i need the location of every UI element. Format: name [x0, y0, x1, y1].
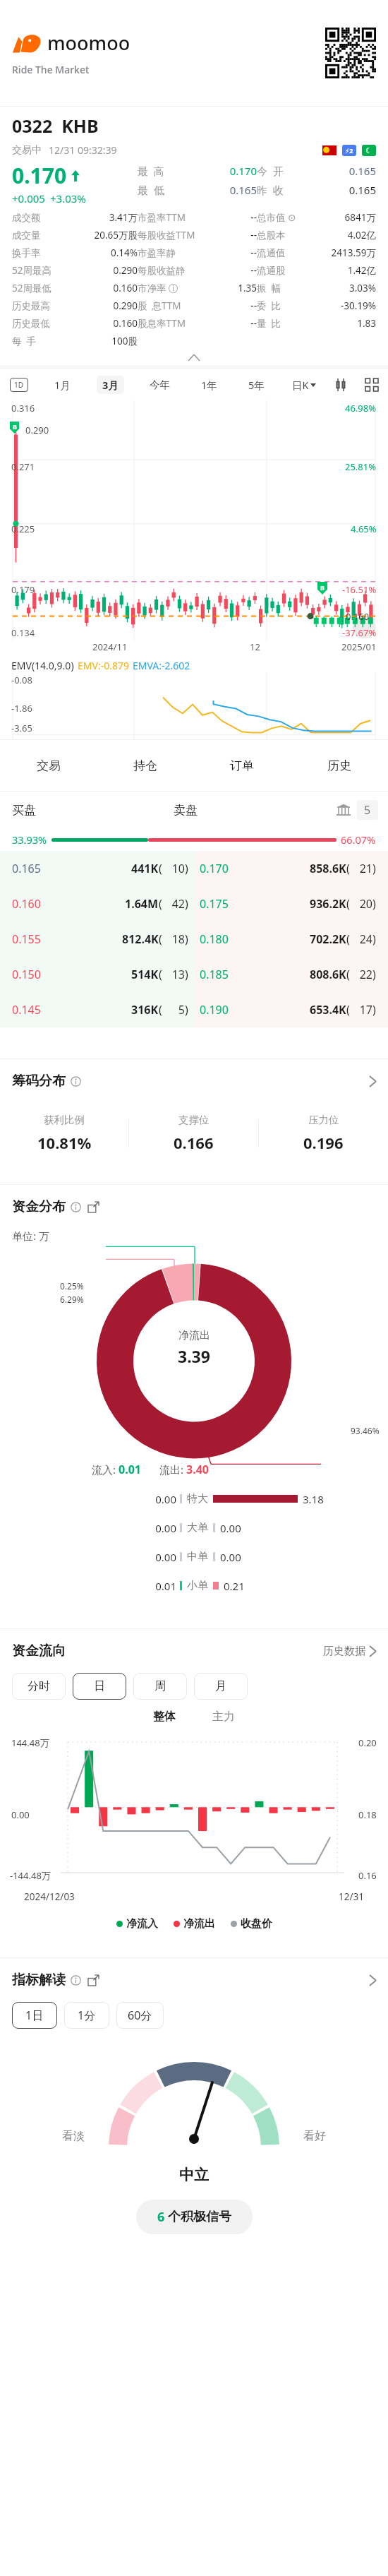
staticText: 买盘	[12, 803, 36, 818]
button[interactable]: Candle	[334, 378, 347, 391]
button[interactable]: 0.155	[12, 922, 188, 957]
staticText: 858.6K	[310, 861, 346, 876]
button[interactable]: 1年	[195, 376, 223, 394]
staticText: 12	[250, 640, 260, 653]
staticText: 0.00	[0, 1521, 176, 1535]
staticText: 0.165	[12, 861, 41, 876]
staticText: -16.51%	[342, 583, 377, 596]
button[interactable]: 1D	[10, 378, 28, 392]
staticText: )	[185, 967, 188, 982]
staticText: 分时	[28, 1679, 50, 1693]
button[interactable]: 日	[73, 1673, 126, 1700]
button[interactable]: 月	[194, 1673, 248, 1700]
staticText: 10.81%	[37, 1132, 92, 1153]
staticText: 52周最高	[12, 264, 51, 277]
staticText: 0.165	[164, 183, 257, 197]
staticText: 交易中	[12, 144, 42, 157]
staticText: 0.16	[358, 1869, 377, 1882]
staticText: 看好	[303, 2129, 326, 2143]
button[interactable]: 5	[357, 800, 378, 820]
button[interactable]: 1月	[49, 376, 76, 394]
staticText: 1分	[78, 2008, 96, 2023]
staticText: 0.14%	[41, 246, 138, 259]
staticText: -30.19%	[281, 299, 376, 312]
staticText: B	[320, 583, 325, 592]
button[interactable]: 60分	[116, 2002, 164, 2029]
staticText: 0.290	[50, 299, 138, 312]
staticText: B	[13, 422, 17, 431]
staticText: 每股收益TTM	[138, 229, 195, 241]
staticText: 0.185	[200, 967, 229, 982]
staticText: 0.21	[224, 1579, 245, 1593]
staticText: -0.08	[11, 674, 32, 686]
button[interactable]: 1分	[64, 2002, 109, 2029]
staticText: 4.02亿	[286, 229, 376, 241]
button[interactable]: 指标解读	[12, 1958, 376, 2002]
button[interactable]: 0.185	[200, 957, 376, 992]
button[interactable]: 0.170	[200, 851, 376, 886]
staticText: 0.170	[164, 164, 257, 178]
button[interactable]: 筹码分布	[12, 1059, 376, 1103]
staticText: )	[372, 1002, 376, 1018]
button[interactable]: 资金分布	[12, 1185, 376, 1229]
staticText: 21	[350, 861, 372, 876]
staticText: 今 开	[257, 164, 284, 178]
button[interactable]: 3月	[97, 376, 124, 394]
button[interactable]: Broker	[336, 802, 351, 818]
staticText: 净流出	[183, 1917, 215, 1931]
button[interactable]: 0.160	[12, 886, 188, 922]
button[interactable]: 主力	[212, 1710, 235, 1724]
staticText: 0.00	[0, 1550, 176, 1564]
staticText: 持仓	[133, 758, 157, 773]
button[interactable]: 交易	[0, 740, 97, 791]
button[interactable]: 持仓	[97, 740, 193, 791]
button[interactable]: 整体	[153, 1710, 176, 1724]
button[interactable]: 分时	[12, 1673, 66, 1700]
button[interactable]: 周	[133, 1673, 187, 1700]
button[interactable]: 6	[136, 2200, 253, 2234]
staticText: EMVA:-2.602	[133, 659, 190, 672]
staticText: 812.4K	[122, 931, 159, 947]
staticText: +0.005	[12, 191, 45, 205]
staticText: 653.4K	[310, 1002, 346, 1018]
button[interactable]: Share	[88, 1975, 99, 1986]
staticText: 资金流向	[12, 1642, 66, 1659]
staticText: 历史最低	[12, 318, 50, 330]
staticText: 历史最高	[12, 300, 50, 312]
staticText: 最 高	[138, 164, 164, 178]
button[interactable]: 0.190	[200, 992, 376, 1027]
staticText: 20	[350, 896, 372, 912]
button[interactable]: 0.175	[200, 886, 376, 922]
staticText: 资金分布	[12, 1198, 66, 1215]
button[interactable]: 资金流向	[12, 1629, 376, 1673]
staticText: 获利比例	[44, 1114, 85, 1126]
button[interactable]: 0.180	[200, 922, 376, 957]
staticText: 514K	[131, 967, 159, 982]
staticText: 成交量	[12, 229, 41, 241]
button[interactable]: 5年	[243, 376, 270, 394]
staticText: 3.39	[178, 1345, 210, 1367]
staticText: 今年	[150, 378, 170, 391]
staticText: 市净率 ⓘ	[138, 282, 178, 294]
staticText: (	[159, 967, 162, 982]
staticText: 6	[157, 2208, 165, 2226]
staticText: 0.190	[200, 1002, 229, 1018]
staticText: 交易	[37, 758, 61, 773]
staticText: 净流出	[178, 1329, 210, 1342]
staticText: +3.03%	[50, 191, 86, 205]
button[interactable]: 今年	[144, 376, 176, 393]
button[interactable]: 日K	[292, 378, 316, 392]
button[interactable]: 0.165	[12, 851, 188, 886]
staticText: 0.160	[51, 282, 138, 294]
button[interactable]: 订单	[193, 740, 291, 791]
staticText: )	[372, 861, 376, 876]
staticText: 10	[162, 861, 185, 876]
staticText: 13	[162, 967, 185, 982]
button[interactable]: 0.145	[12, 992, 188, 1027]
staticText: 3.40	[186, 1462, 209, 1477]
button[interactable]: 1日	[12, 2002, 57, 2029]
button[interactable]: Share	[88, 1202, 99, 1212]
button[interactable]: 历史	[291, 740, 388, 791]
button[interactable]: 0.150	[12, 957, 188, 992]
button[interactable]: Grid	[365, 378, 378, 391]
